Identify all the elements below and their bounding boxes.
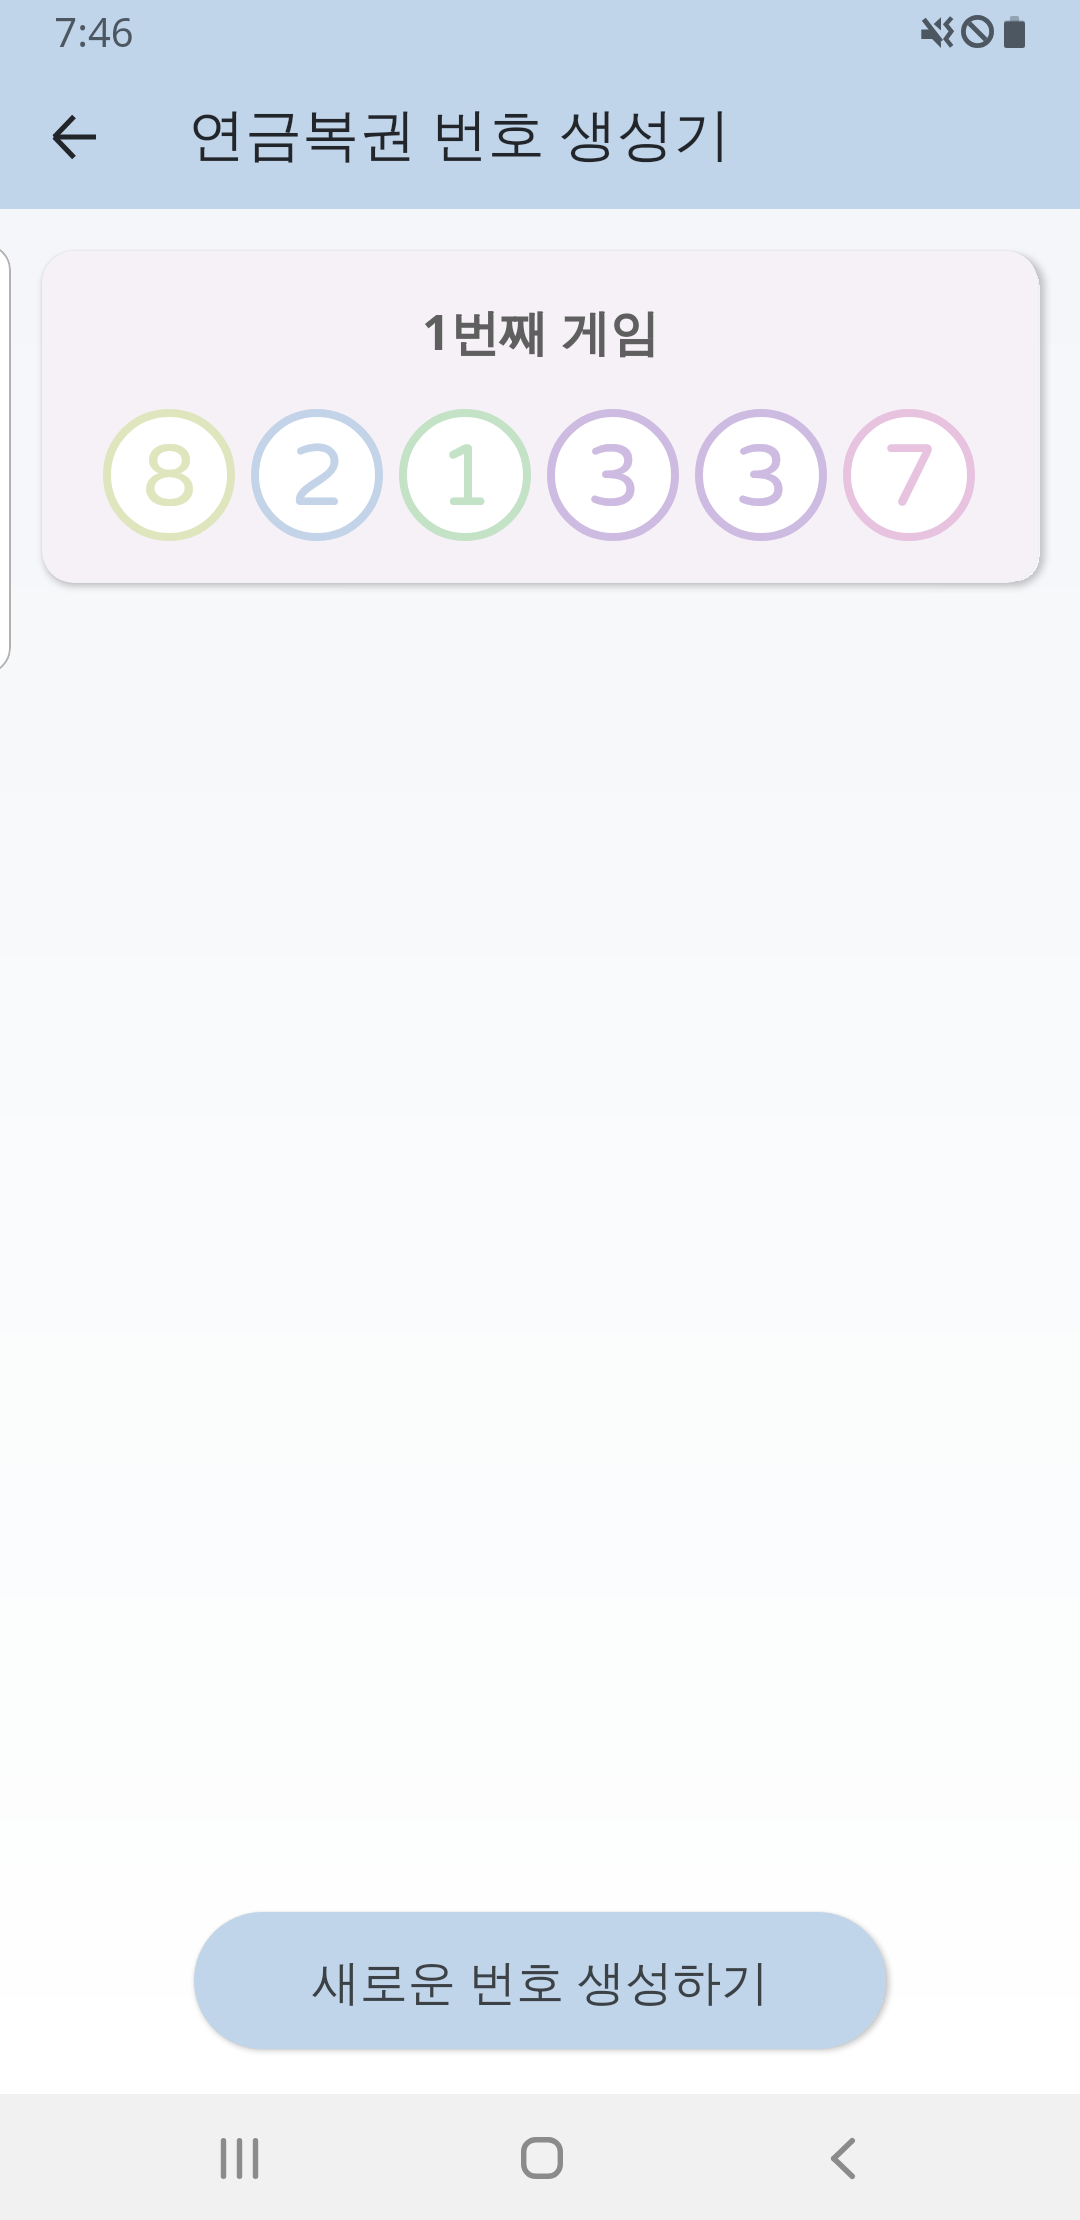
staticText: 7 bbox=[882, 425, 937, 530]
button[interactable]: 1번째 게임 bbox=[42, 251, 1038, 583]
button[interactable]: Back bbox=[753, 2098, 933, 2218]
staticText: 3 bbox=[734, 425, 789, 530]
staticText: 3 bbox=[586, 425, 641, 530]
button[interactable]: Home bbox=[452, 2098, 632, 2218]
staticText: 7:46 bbox=[54, 4, 134, 58]
staticText: 2 bbox=[290, 425, 345, 530]
staticText: 1 bbox=[438, 425, 493, 530]
button[interactable]: 새로운 번호 생성하기 bbox=[194, 1912, 886, 2049]
staticText: 새로운 번호 생성하기 bbox=[312, 1948, 769, 2014]
staticText: 1번째 게임 bbox=[422, 298, 659, 365]
staticText: 8 bbox=[142, 425, 197, 530]
staticText: 연금복권 번호 생성기 bbox=[188, 93, 731, 171]
button[interactable]: Recent apps bbox=[149, 2098, 329, 2218]
button[interactable]: Back bbox=[26, 89, 121, 184]
